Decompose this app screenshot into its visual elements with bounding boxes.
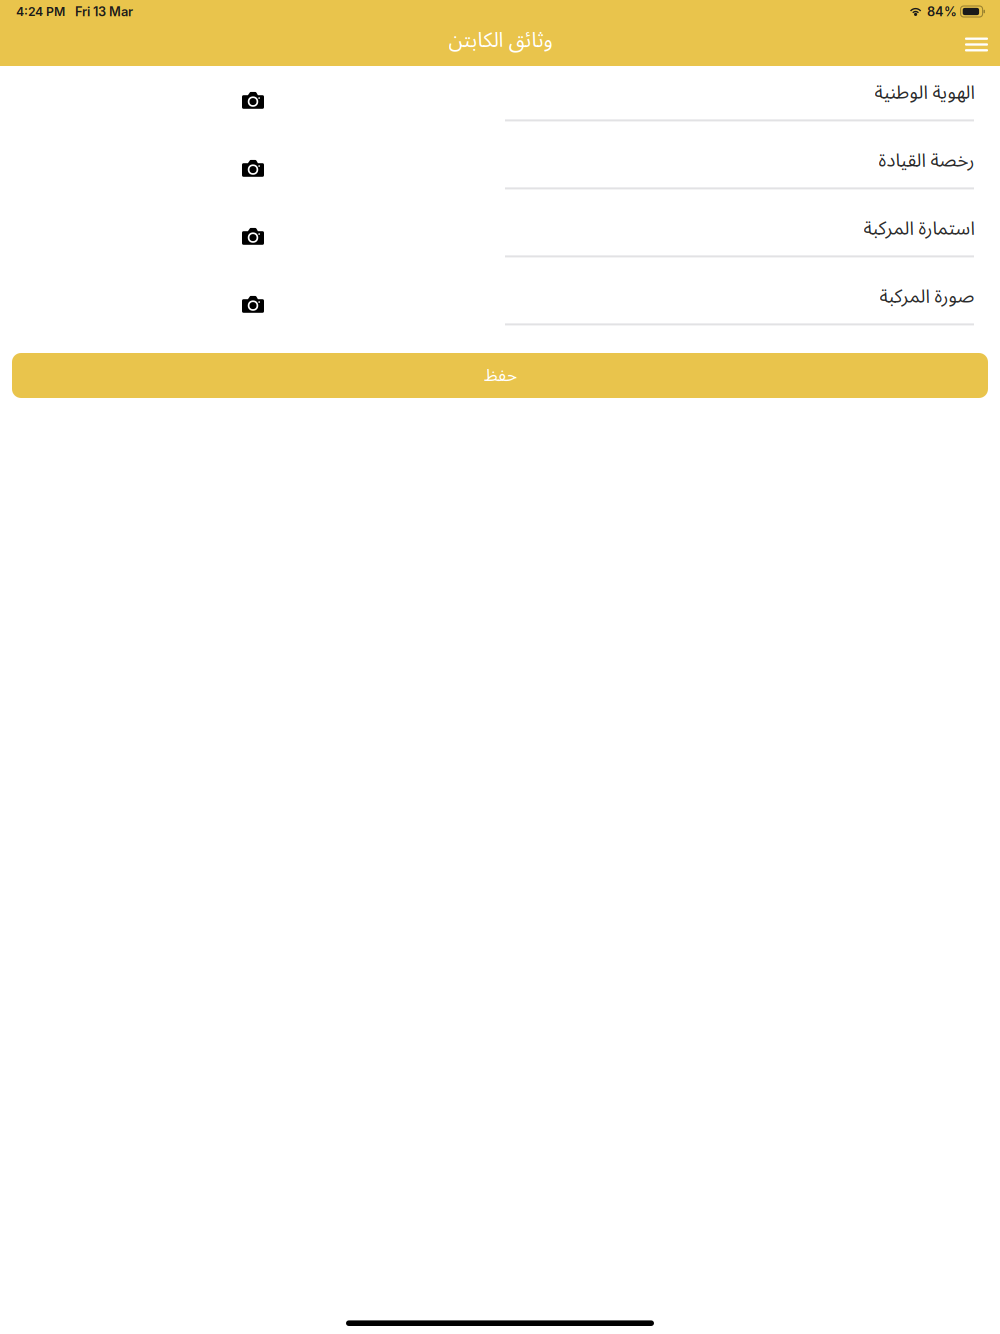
staticText: استمارة المركبة bbox=[863, 209, 974, 248]
staticText: Fri 13 Mar bbox=[75, 4, 133, 19]
button[interactable]: استمارة المركبة bbox=[0, 204, 1000, 272]
staticText: وثائق الكابتن bbox=[448, 19, 552, 62]
staticText: الهوية الوطنية bbox=[874, 73, 974, 112]
button[interactable]: الهوية الوطنية bbox=[0, 68, 1000, 136]
staticText: حفظ bbox=[483, 357, 516, 394]
button[interactable]: حفظ bbox=[12, 353, 988, 398]
staticText: 84% bbox=[927, 4, 957, 19]
staticText: 4:24 PM bbox=[16, 4, 65, 19]
button[interactable]: Menu bbox=[953, 25, 1000, 63]
button[interactable]: رخصة القيادة bbox=[0, 136, 1000, 204]
staticText: صورة المركبة bbox=[879, 277, 974, 316]
staticText: رخصة القيادة bbox=[878, 141, 974, 180]
button[interactable]: صورة المركبة bbox=[0, 272, 1000, 340]
